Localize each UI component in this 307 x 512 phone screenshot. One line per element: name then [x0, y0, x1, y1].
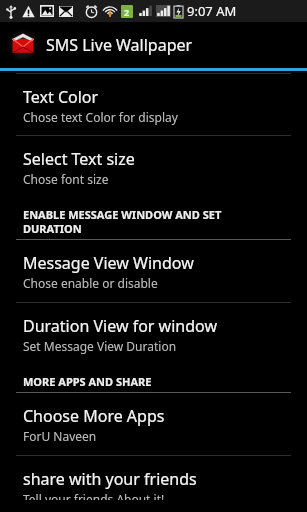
staticText: 9:07 AM: [187, 2, 237, 20]
staticText: Duration View for window: [23, 315, 217, 337]
staticText: Select Text size: [23, 148, 135, 170]
staticText: ENABLE MESSAGE WINDOW AND SET DURATION: [23, 207, 267, 236]
button[interactable]: share with your friends: [0, 456, 307, 512]
staticText: MORE APPS AND SHARE: [23, 374, 152, 389]
staticText: ForU Naveen: [23, 428, 97, 444]
button[interactable]: Duration View for window: [0, 303, 307, 366]
staticText: 2: [124, 6, 130, 18]
button[interactable]: Choose More Apps: [0, 393, 307, 455]
staticText: Chose text Color for display: [23, 109, 178, 125]
staticText: share with your friends: [23, 468, 197, 490]
staticText: Message View Window: [23, 252, 194, 274]
staticText: Choose More Apps: [23, 405, 165, 427]
staticText: SMS Live Wallpaper: [46, 34, 193, 56]
button[interactable]: Select Text size: [0, 136, 307, 199]
staticText: Text Color: [23, 86, 99, 108]
button[interactable]: Message View Window: [0, 240, 307, 302]
staticText: Set Message View Duration: [23, 338, 177, 354]
staticText: Chose enable or disable: [23, 275, 158, 291]
staticText: Tell your friends About it!: [23, 491, 165, 500]
button[interactable]: Text Color: [0, 74, 307, 135]
staticText: Chose font size: [23, 171, 109, 187]
